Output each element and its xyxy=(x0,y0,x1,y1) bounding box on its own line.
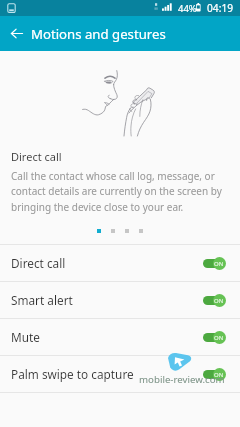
button[interactable]: Back xyxy=(0,16,31,51)
staticText: mobile-review.com xyxy=(139,373,225,386)
staticText: Smart alert xyxy=(11,292,73,308)
staticText: 04:19 xyxy=(207,1,234,15)
staticText: Mute xyxy=(11,329,40,345)
button[interactable]: Direct call xyxy=(0,245,240,281)
staticText: Motions and gestures xyxy=(31,25,166,43)
staticText: ON xyxy=(214,260,224,268)
staticText: 44% xyxy=(178,2,197,15)
staticText: Palm swipe to capture xyxy=(11,366,134,382)
button[interactable]: Mute xyxy=(0,319,240,355)
button[interactable]: Palm swipe to capture xyxy=(0,356,240,392)
staticText: Call the contact whose call log, message… xyxy=(11,169,229,214)
button[interactable]: Smart alert xyxy=(0,282,240,318)
staticText: Direct call xyxy=(11,255,66,271)
staticText: ON xyxy=(214,297,224,305)
staticText: ON xyxy=(214,334,224,342)
staticText: ON xyxy=(214,371,224,379)
staticText: Direct call xyxy=(11,149,62,164)
